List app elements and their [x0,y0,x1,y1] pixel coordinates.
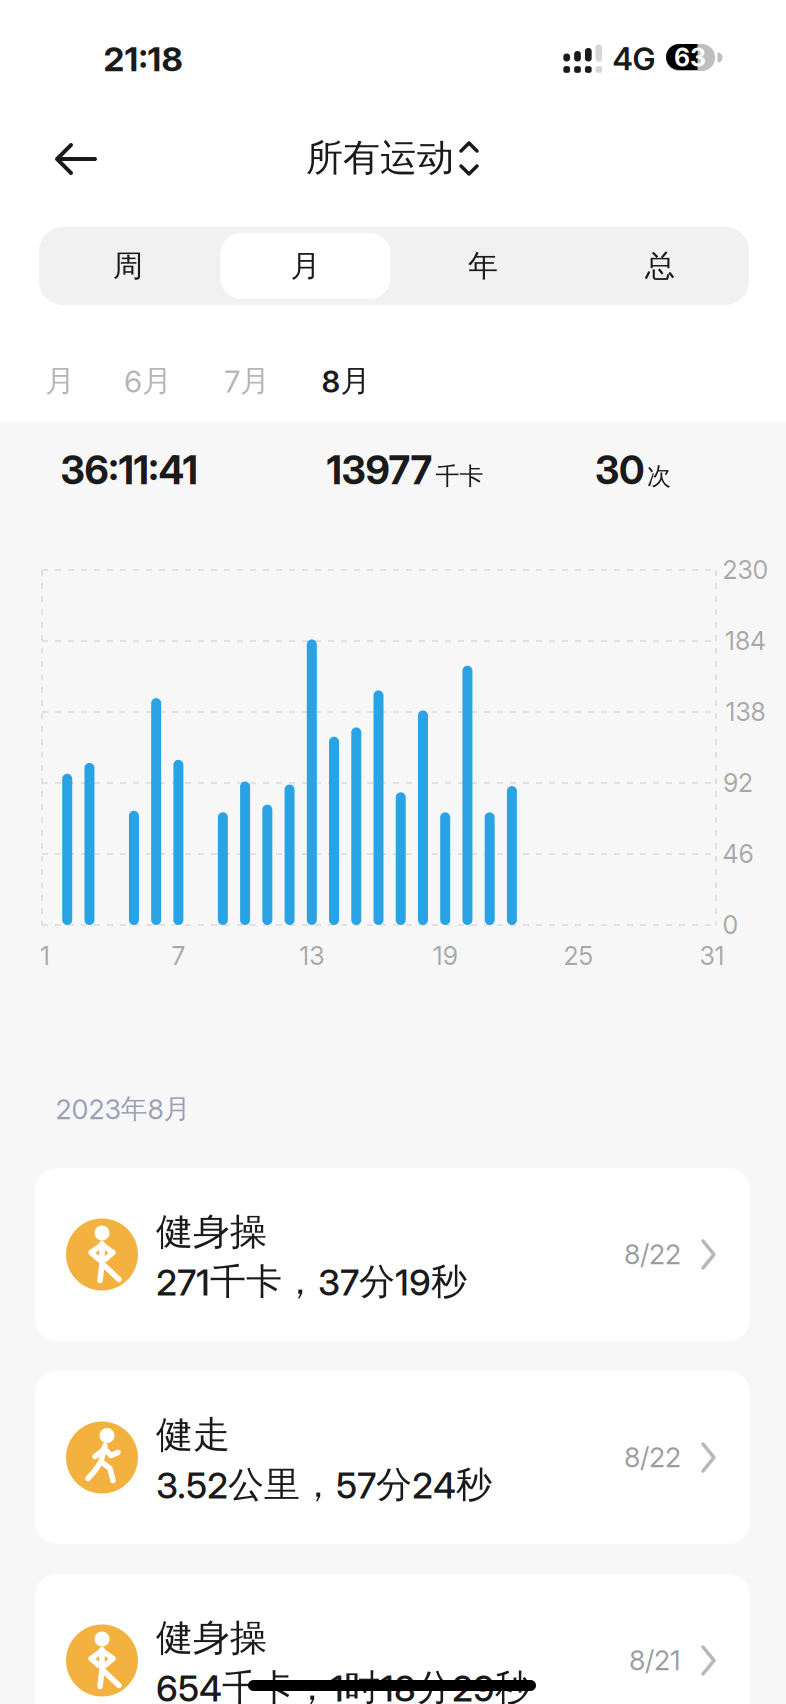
staticText: 19 [433,941,458,971]
staticText: 8/22 [624,1441,681,1474]
staticText: 21:18 [103,38,182,79]
staticText: 8月 [321,362,370,400]
staticText: 7 [171,941,185,971]
staticText: 271千卡，37分19秒 [156,1259,467,1304]
staticText: 健身操 [156,1208,267,1255]
staticText: 健身操 [156,1614,267,1661]
staticText: 36:11:41 [60,446,197,494]
staticText: 25 [564,941,594,971]
staticText: 7月 [224,362,270,400]
staticText: 30 [595,446,644,494]
staticText: 周 [113,247,143,285]
staticText: 63 [674,42,706,73]
staticText: 年 [468,247,498,285]
staticText: 92 [723,768,753,798]
staticText: 13977 [326,446,432,494]
staticText: 千卡 [435,461,483,491]
staticText: 月 [290,247,320,285]
staticText: 总 [645,247,675,285]
staticText: 31 [699,941,724,971]
staticText: 138 [725,697,765,727]
staticText: 次 [647,461,671,491]
staticText: 8/21 [629,1644,681,1677]
staticText: 1 [40,941,50,971]
staticText: 4G [612,40,655,78]
staticText: 184 [725,626,766,656]
staticText: 2023年8月 [55,1092,190,1126]
staticText: 所有运动 [306,135,454,181]
staticText: 月 [45,362,75,400]
staticText: 6月 [124,362,172,400]
staticText: 46 [722,839,753,869]
staticText: 8/22 [624,1238,681,1271]
staticText: 230 [722,555,768,585]
staticText: 0 [722,910,738,940]
staticText: 3.52公里，57分24秒 [156,1462,492,1507]
staticText: 健走 [156,1411,230,1458]
staticText: 13 [299,941,324,971]
staticText: 654千卡，1时18分29秒 [156,1665,531,1704]
